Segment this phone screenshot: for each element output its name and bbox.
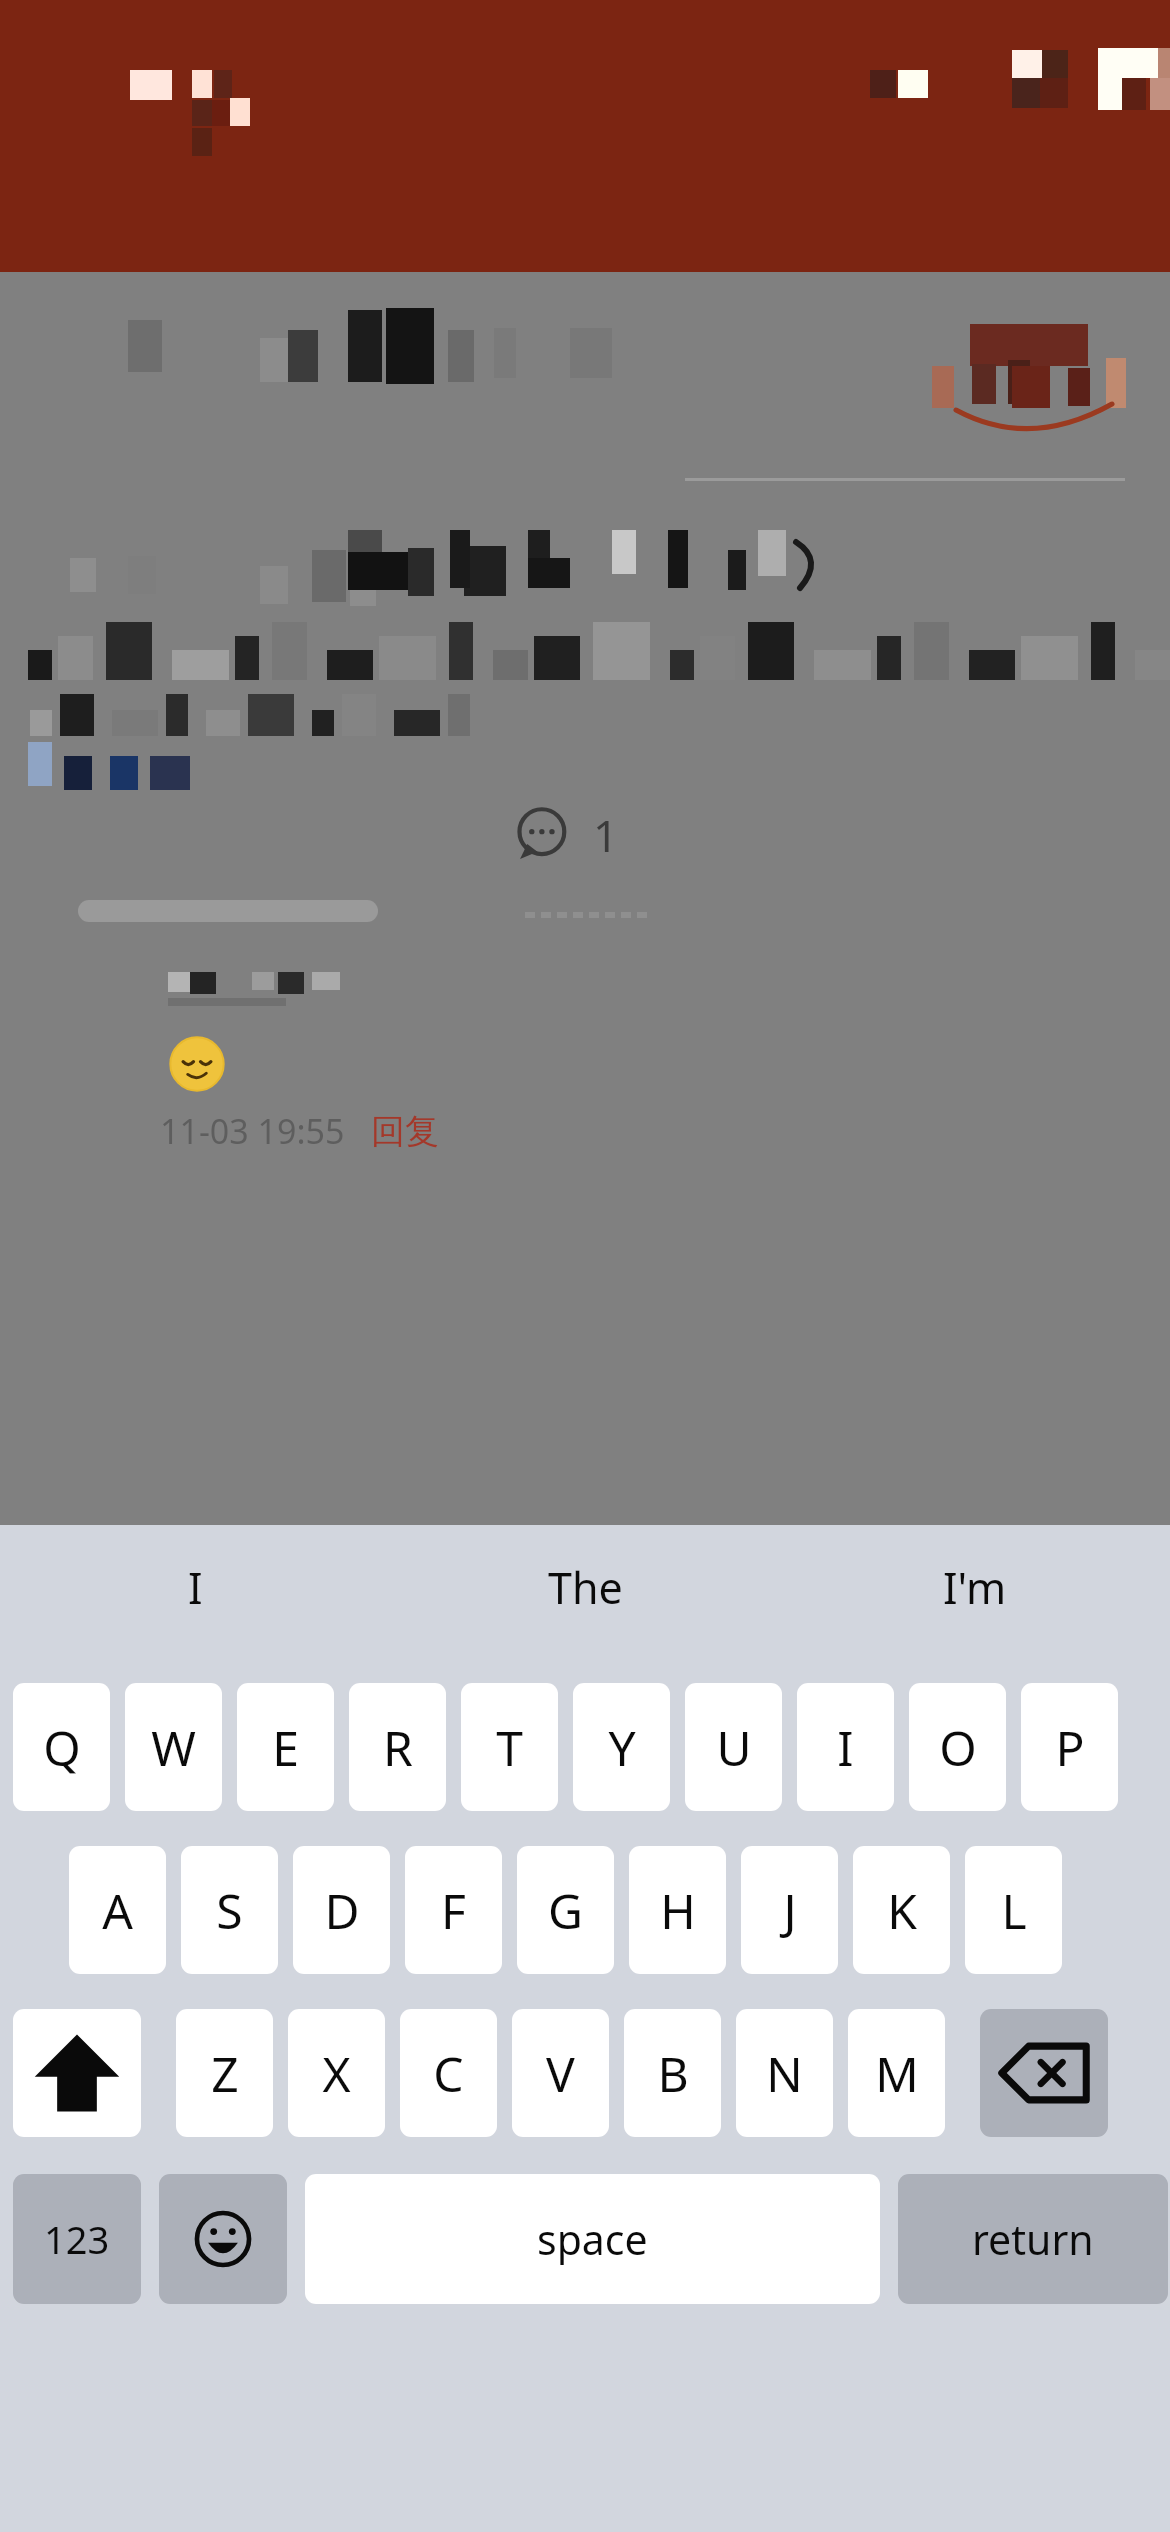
staticText: The xyxy=(548,1558,623,1617)
staticText: J xyxy=(783,1878,797,1943)
button[interactable]: 123 xyxy=(13,2174,141,2304)
staticText: Q xyxy=(43,1715,81,1780)
button[interactable]: K xyxy=(853,1846,950,1974)
staticText: I xyxy=(188,1558,203,1617)
staticText: E xyxy=(272,1715,299,1780)
staticText: X xyxy=(322,2041,351,2106)
staticText: P xyxy=(1055,1715,1085,1780)
button[interactable]: H xyxy=(629,1846,726,1974)
button[interactable]: I'm xyxy=(780,1525,1170,1650)
staticText: B xyxy=(657,2041,689,2106)
button[interactable]: 回复 xyxy=(371,1110,439,1153)
staticText: A xyxy=(102,1878,133,1943)
staticText: N xyxy=(766,2041,803,2106)
staticText: G xyxy=(548,1878,583,1943)
staticText: L xyxy=(1001,1878,1027,1943)
staticText: Y xyxy=(608,1715,636,1780)
staticText: K xyxy=(887,1878,917,1943)
button[interactable]: M xyxy=(848,2009,945,2137)
button[interactable]: return xyxy=(898,2174,1168,2304)
button[interactable]: C xyxy=(400,2009,497,2137)
button[interactable]: Shift xyxy=(13,2009,141,2137)
button[interactable]: A xyxy=(69,1846,166,1974)
staticText: I xyxy=(837,1715,854,1780)
staticText: W xyxy=(151,1715,196,1780)
button[interactable]: B xyxy=(624,2009,721,2137)
staticText: 11-03 19:55 xyxy=(160,1108,345,1154)
button[interactable]: S xyxy=(181,1846,278,1974)
staticText: M xyxy=(875,2041,919,2106)
button[interactable]: J xyxy=(741,1846,838,1974)
staticText: 回复 xyxy=(371,1110,439,1153)
button[interactable]: U xyxy=(685,1683,782,1811)
button[interactable]: T xyxy=(461,1683,558,1811)
button[interactable]: F xyxy=(405,1846,502,1974)
button[interactable]: 1 xyxy=(515,805,619,865)
staticText: O xyxy=(939,1715,977,1780)
button[interactable]: R xyxy=(349,1683,446,1811)
staticText: 123 xyxy=(44,2213,110,2265)
button[interactable]: Emoji xyxy=(159,2174,287,2304)
button[interactable]: Z xyxy=(176,2009,273,2137)
staticText: space xyxy=(537,2211,648,2267)
button[interactable]: Backspace xyxy=(980,2009,1108,2137)
button[interactable]: O xyxy=(909,1683,1006,1811)
button[interactable]: Y xyxy=(573,1683,670,1811)
button[interactable]: P xyxy=(1021,1683,1118,1811)
button[interactable]: D xyxy=(293,1846,390,1974)
button[interactable]: E xyxy=(237,1683,334,1811)
staticText: F xyxy=(441,1878,466,1943)
staticText: return xyxy=(972,2211,1094,2267)
staticText: D xyxy=(324,1878,360,1943)
button[interactable]: G xyxy=(517,1846,614,1974)
staticText: V xyxy=(546,2041,575,2106)
staticText: R xyxy=(383,1715,413,1780)
staticText: 1 xyxy=(593,805,619,865)
staticText: I'm xyxy=(943,1558,1007,1617)
button[interactable]: The xyxy=(390,1525,780,1650)
button[interactable]: Q xyxy=(13,1683,110,1811)
staticText: H xyxy=(660,1878,696,1943)
staticText: Z xyxy=(211,2041,239,2106)
staticText: C xyxy=(433,2041,464,2106)
button[interactable]: I xyxy=(797,1683,894,1811)
button[interactable]: W xyxy=(125,1683,222,1811)
button[interactable]: I xyxy=(0,1525,390,1650)
button[interactable]: N xyxy=(736,2009,833,2137)
button[interactable]: space xyxy=(305,2174,880,2304)
button[interactable]: V xyxy=(512,2009,609,2137)
staticText: T xyxy=(496,1715,523,1780)
button[interactable]: Follow xyxy=(920,312,1110,432)
staticText: S xyxy=(216,1878,243,1943)
button[interactable]: L xyxy=(965,1846,1062,1974)
button[interactable]: X xyxy=(288,2009,385,2137)
staticText: U xyxy=(716,1715,752,1780)
